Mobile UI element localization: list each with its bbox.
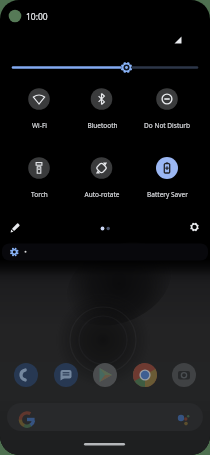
- button[interactable]: [83, 153, 123, 203]
- button[interactable]: [7, 403, 203, 431]
- button[interactable]: [2, 243, 208, 261]
- button[interactable]: [147, 153, 187, 203]
- staticText: 10:00: [26, 11, 48, 23]
- button[interactable]: [5, 218, 25, 238]
- staticText: Auto-rotate: [84, 190, 120, 199]
- staticText: Bluetooth: [87, 121, 118, 130]
- button[interactable]: [147, 84, 187, 134]
- button[interactable]: [14, 363, 38, 387]
- staticText: Torch: [31, 190, 48, 199]
- button[interactable]: [19, 84, 59, 134]
- button[interactable]: [19, 153, 59, 203]
- button[interactable]: [133, 363, 157, 387]
- staticText: Battery Saver: [147, 190, 188, 199]
- button[interactable]: [6, 58, 204, 78]
- button[interactable]: [93, 363, 117, 387]
- staticText: Do Not Disturb: [144, 121, 190, 130]
- button[interactable]: [83, 84, 123, 134]
- button[interactable]: [172, 363, 196, 387]
- button[interactable]: [54, 363, 78, 387]
- button[interactable]: [184, 217, 204, 237]
- staticText: Wi-Fi: [32, 121, 47, 130]
